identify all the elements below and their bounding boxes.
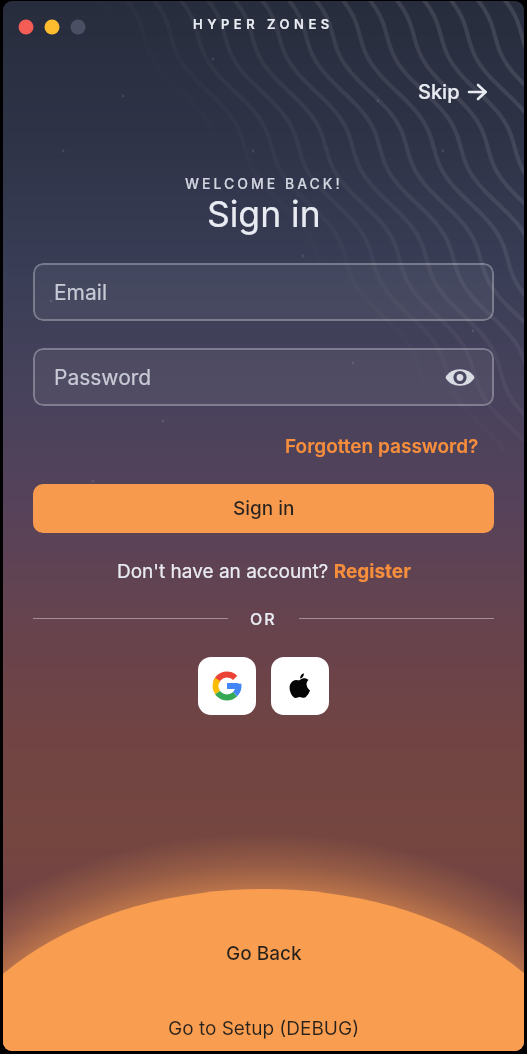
- button[interactable]: Don't have an account? Register: [117, 560, 411, 583]
- button[interactable]: Password: [33, 348, 494, 406]
- staticText: Sign in: [207, 193, 321, 236]
- button[interactable]: Skip: [418, 80, 488, 104]
- button[interactable]: Go to Setup (DEBUG): [168, 1017, 360, 1040]
- button[interactable]: Go Back: [226, 942, 302, 965]
- staticText: Email: [54, 280, 107, 305]
- staticText: OR: [250, 609, 277, 628]
- staticText: WELCOME BACK!: [185, 175, 343, 192]
- staticText: Go to Setup (DEBUG): [168, 1017, 360, 1040]
- button[interactable]: [271, 657, 329, 715]
- button[interactable]: Forgotten password?: [285, 435, 479, 458]
- staticText: Go Back: [226, 942, 302, 965]
- staticText: Skip: [418, 80, 460, 104]
- button[interactable]: Sign in: [33, 484, 494, 533]
- button[interactable]: Email: [33, 263, 494, 321]
- staticText: HYPER ZONES: [193, 16, 334, 32]
- staticText: Sign in: [233, 497, 295, 520]
- staticText: Password: [54, 365, 152, 390]
- button[interactable]: [198, 657, 256, 715]
